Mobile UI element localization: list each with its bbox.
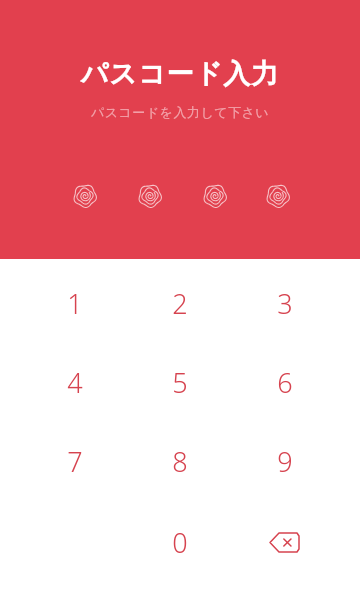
button[interactable]: 0 [132,507,228,577]
staticText: 9 [277,443,293,480]
staticText: 4 [67,364,83,401]
button[interactable]: 4 [27,347,123,417]
staticText: 6 [277,364,293,401]
button[interactable]: 1 [27,268,123,338]
staticText: 3 [277,285,293,322]
button[interactable]: 3 [237,268,333,338]
staticText: パスコードを入力して下さい [0,104,360,120]
staticText: 0 [172,524,188,561]
button[interactable]: 9 [237,426,333,496]
staticText: 5 [172,364,188,401]
button[interactable]: 7 [27,426,123,496]
staticText: 7 [67,443,83,480]
button[interactable]: 6 [237,347,333,417]
staticText: パスコード入力 [0,57,360,91]
button[interactable]: 5 [132,347,228,417]
button[interactable]: 2 [132,268,228,338]
button[interactable]: 8 [132,426,228,496]
staticText: 1 [67,285,83,322]
button[interactable]: Backspace [237,507,333,577]
staticText: 8 [172,443,188,480]
staticText: 2 [172,285,188,322]
